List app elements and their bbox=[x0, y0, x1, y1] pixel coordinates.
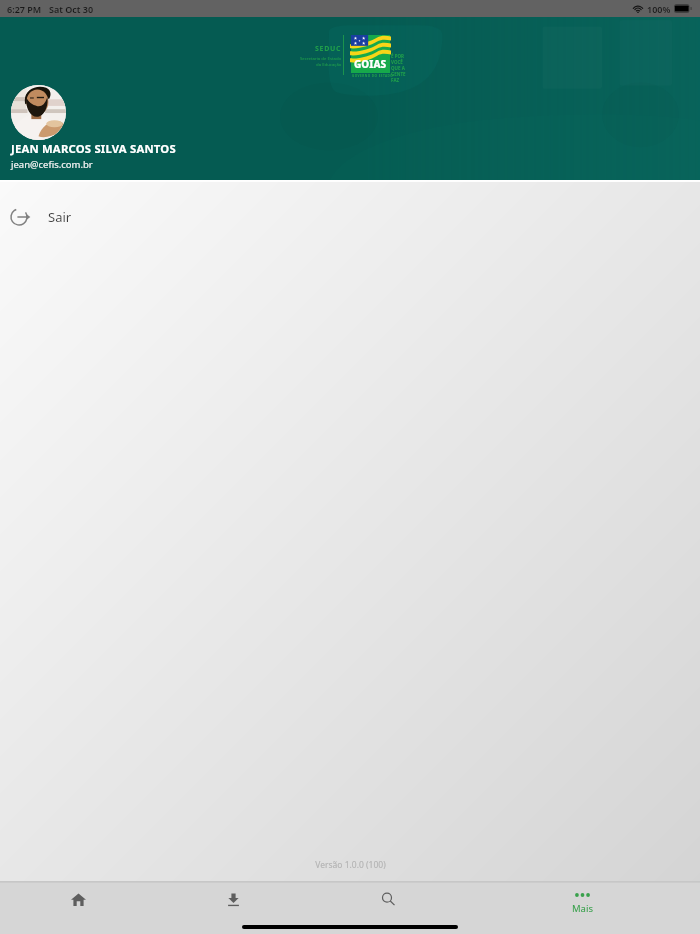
other: Sair bbox=[8, 206, 30, 228]
staticText: SEDUC bbox=[315, 44, 342, 54]
staticText: da Educação bbox=[316, 61, 342, 67]
button[interactable]: Sair bbox=[0, 182, 700, 252]
staticText: GENTE bbox=[391, 71, 406, 77]
staticText: Sat Oct 30 bbox=[49, 3, 94, 15]
staticText: Mais bbox=[572, 902, 593, 915]
staticText: GOVERNO DO ESTADO bbox=[352, 74, 394, 78]
button[interactable]: Home bbox=[0, 883, 155, 917]
staticText: GOIAS bbox=[354, 57, 387, 71]
button[interactable]: Downloads bbox=[155, 883, 310, 917]
staticText: 6:27 PM bbox=[7, 3, 42, 15]
button[interactable]: Buscar bbox=[310, 883, 465, 917]
button[interactable]: Mais bbox=[465, 887, 700, 921]
staticText: QUE A bbox=[391, 65, 405, 71]
staticText: jean@cefis.com.br bbox=[11, 158, 93, 171]
staticText: É POR bbox=[391, 53, 404, 59]
staticText: Secretaria de Estado bbox=[300, 55, 342, 61]
staticText: Versão 1.0.0 (100) bbox=[315, 859, 386, 871]
staticText: Sair bbox=[48, 208, 72, 226]
staticText: VOCÊ bbox=[391, 59, 403, 65]
staticText: FAZ bbox=[391, 77, 400, 83]
staticText: 100% bbox=[647, 3, 671, 15]
staticText: JEAN MARCOS SILVA SANTOS bbox=[11, 141, 176, 156]
